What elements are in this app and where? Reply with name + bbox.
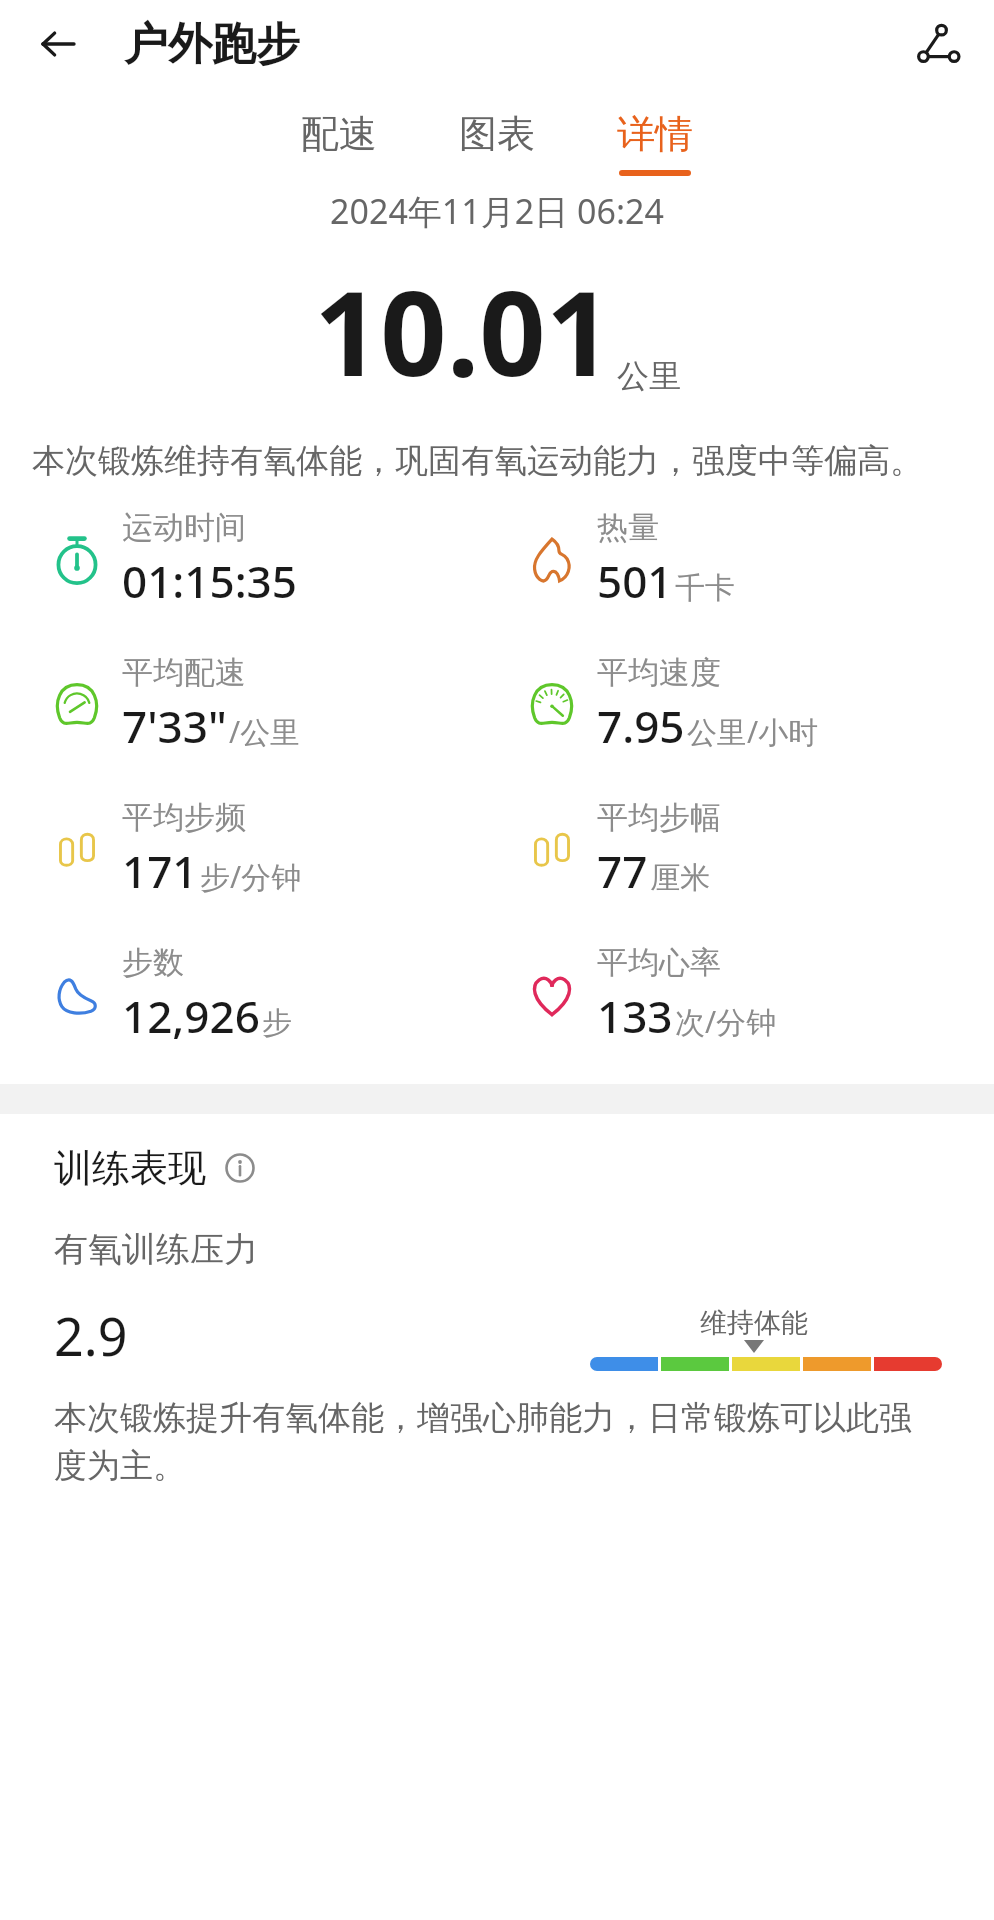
staticText: 2.9 [54,1300,128,1371]
staticText: 平均步幅 [597,798,721,837]
button[interactable]: 平均配速 [48,653,301,756]
staticText: 平均速度 [597,653,721,692]
staticText: 步数 [122,943,184,982]
button[interactable]: 平均步幅 [523,798,721,901]
staticText: 运动时间 [122,508,246,547]
button[interactable]: 运动时间 [48,508,297,611]
staticText: 平均配速 [122,653,246,692]
staticText: 10.01 [314,252,613,410]
button[interactable]: 平均心率 [523,943,777,1046]
staticText: 77 [597,841,648,901]
staticText: 171 [122,841,198,901]
button[interactable]: 热量 [523,508,735,611]
button[interactable]: Share [908,13,970,75]
button[interactable]: Info [220,1148,260,1188]
button[interactable]: 图表 [449,104,545,182]
staticText: 2024年11月2日 06:24 [0,188,994,234]
button[interactable]: 平均步频 [48,798,302,901]
button[interactable]: Back [30,16,86,72]
staticText: 步/分钟 [200,856,302,897]
staticText: 次/分钟 [675,1001,777,1042]
staticText: 01:15:35 [122,551,297,611]
staticText: 平均步频 [122,798,246,837]
staticText: 配速 [301,110,377,158]
button[interactable]: 配速 [291,104,387,182]
button[interactable]: 步数 [48,943,292,1046]
staticText: 图表 [459,110,535,158]
staticText: 本次锻炼提升有氧体能，增强心肺能力，日常锻炼可以此强度为主。 [54,1397,940,1487]
staticText: 详情 [617,110,693,158]
button[interactable]: 平均速度 [523,653,819,756]
staticText: 热量 [597,508,659,547]
staticText: 步 [262,1004,292,1042]
staticText: 7'33" [122,696,227,756]
staticText: 公里/小时 [687,711,819,752]
staticText: 7.95 [597,696,685,756]
staticText: 公里 [617,356,681,396]
staticText: 千卡 [675,569,735,607]
staticText: 本次锻炼维持有氧体能，巩固有氧运动能力，强度中等偏高。 [32,440,962,482]
staticText: 平均心率 [597,943,721,982]
staticText: /公里 [229,711,301,752]
staticText: 户外跑步 [124,17,300,72]
staticText: 维持体能 [700,1306,808,1340]
button[interactable]: 详情 [607,104,703,182]
staticText: 有氧训练压力 [54,1228,258,1271]
staticText: 12,926 [122,986,260,1046]
staticText: 501 [597,551,673,611]
staticText: 133 [597,986,673,1046]
staticText: 厘米 [650,859,710,897]
staticText: 训练表现 [54,1144,206,1192]
